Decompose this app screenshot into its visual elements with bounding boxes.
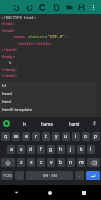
button[interactable]: ?123 [1,171,13,180]
button[interactable]: w [12,132,20,141]
button[interactable]: b [57,158,65,167]
staticText: h1 [2,83,7,89]
staticText: y [55,133,58,140]
staticText: <body> [1,54,16,59]
button[interactable]: x [27,158,35,167]
button[interactable]: m [77,158,85,167]
staticText: b [59,159,63,166]
button[interactable]: Shift [1,158,15,167]
button[interactable]: n [67,158,75,167]
staticText: h [23,121,26,127]
staticText: , [19,173,21,178]
button[interactable]: z [17,158,25,167]
button[interactable]: g [47,145,55,154]
button[interactable]: html [0,98,96,106]
staticText: head [2,91,12,97]
button[interactable]: y [52,132,60,141]
staticText: t [45,133,47,140]
button[interactable]: Open folder [63,1,75,13]
button[interactable]: Voice input [91,120,98,127]
button[interactable]: Save [75,1,87,13]
staticText: p [94,133,98,140]
staticText: h [59,146,63,153]
staticText: o [84,133,88,140]
button[interactable]: Enter [86,171,100,180]
staticText: charset [28,34,45,39]
staticText: r [35,133,38,140]
staticText: html [2,99,12,105]
button[interactable]: h [22,120,27,128]
staticText: i [75,133,77,140]
staticText: </head> [1,47,18,52]
staticText: ?123 [3,173,12,178]
staticText: e [25,133,28,140]
staticText: v [50,159,53,166]
button[interactable]: Redo [23,1,35,13]
button[interactable]: i [72,132,80,141]
button[interactable]: a [7,145,15,154]
staticText: a [10,146,13,153]
button[interactable]: Hide keyboard [0,185,33,200]
button[interactable]: l [87,145,95,154]
staticText: m [79,159,84,166]
button[interactable]: h1 [0,82,96,90]
staticText: n [69,159,73,166]
button[interactable]: c [37,158,45,167]
staticText: <meta [13,34,28,39]
staticText: <head> [1,28,16,33]
button[interactable]: . [75,171,84,180]
staticText: > [65,34,68,39]
button[interactable]: f [37,145,45,154]
staticText: hama [41,121,53,127]
staticText: . [79,173,81,178]
staticText: k [80,146,83,153]
button[interactable]: p [92,132,100,141]
staticText: l [90,146,92,153]
staticText: z [20,159,23,166]
staticText: f [40,146,42,153]
button[interactable]: q [1,132,10,141]
button[interactable]: Run [36,1,48,13]
button[interactable]: Recent apps [67,185,101,200]
staticText: x [30,159,33,166]
staticText: = [45,34,48,39]
button[interactable]: o [82,132,90,141]
staticText: </html> [1,73,18,78]
button[interactable]: j [67,145,75,154]
staticText: u [64,133,68,140]
staticText: html5 template [2,107,33,113]
staticText: "UTF-8" [48,34,65,39]
button[interactable]: Gboard settings [3,120,10,127]
button[interactable]: s [17,145,25,154]
staticText: q [4,133,8,140]
button[interactable]: hama [40,120,54,128]
button[interactable]: e [22,132,30,141]
staticText: h [9,60,12,65]
staticText: </body> [1,67,18,72]
staticText: s [20,146,23,153]
staticText: <!DOCTYPE html> [1,15,37,20]
button[interactable]: head [0,90,96,98]
button[interactable]: html5 template [0,106,96,114]
staticText: j [70,146,72,153]
staticText: <html> [1,21,16,26]
staticText: hami [69,121,80,127]
button[interactable]: v [47,158,55,167]
button[interactable]: Home [33,185,67,200]
button[interactable]: EN · EN [26,171,73,180]
button[interactable]: k [77,145,85,154]
staticText: w [14,133,18,140]
button[interactable]: Undo [10,1,22,13]
button[interactable]: d [27,145,35,154]
button[interactable]: , [15,171,24,180]
button[interactable]: u [62,132,70,141]
staticText: d [29,146,33,153]
staticText: g [49,146,53,153]
button[interactable]: More options [87,1,99,13]
button[interactable]: New file [50,1,62,13]
button[interactable]: Backspace [87,158,100,167]
button[interactable]: r [32,132,40,141]
button[interactable]: hami [68,120,81,128]
button[interactable]: t [42,132,50,141]
button[interactable]: h [57,145,65,154]
